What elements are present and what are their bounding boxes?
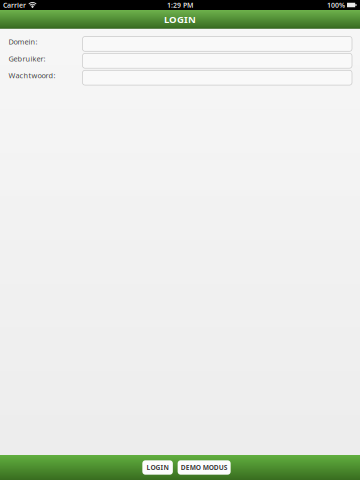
staticText: Gebruiker: xyxy=(8,54,45,64)
staticText: LOGIN xyxy=(147,463,169,472)
button[interactable] xyxy=(82,70,352,85)
button[interactable]: DEMO MODUS xyxy=(178,460,231,475)
staticText: Domein: xyxy=(8,37,37,47)
staticText: 100% xyxy=(327,0,345,10)
staticText: Wachtwoord: xyxy=(8,70,55,80)
staticText: Carrier xyxy=(3,0,26,10)
staticText: LOGIN xyxy=(164,13,196,26)
button[interactable] xyxy=(82,53,352,68)
button[interactable]: LOGIN xyxy=(142,460,173,475)
staticText: 1:29 PM xyxy=(167,0,193,10)
staticText: DEMO MODUS xyxy=(181,463,228,472)
button[interactable] xyxy=(82,36,352,51)
